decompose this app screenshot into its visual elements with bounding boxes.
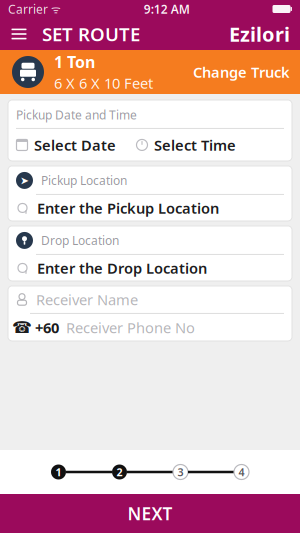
staticText: Pickup Location — [41, 172, 127, 188]
staticText: 2 — [116, 465, 122, 479]
staticText: 4 — [238, 465, 244, 479]
button[interactable]: Select Date — [8, 133, 116, 157]
staticText: Change Truck — [193, 62, 290, 82]
staticText: 1 — [55, 465, 61, 479]
staticText: Drop Location — [41, 232, 119, 248]
staticText: Receiver Phone No — [66, 318, 195, 337]
staticText: SET ROUTE — [42, 22, 140, 46]
staticText: ➤ — [20, 174, 29, 186]
staticText: Receiver Name — [36, 290, 138, 309]
staticText: Ezilori — [229, 21, 290, 47]
staticText: 6 X 6 X 10 Feet — [54, 73, 153, 93]
staticText: 3 — [177, 465, 183, 479]
staticText: Enter the Drop Location — [37, 258, 207, 278]
staticText: NEXT — [127, 502, 172, 525]
staticText: 9:12 AM — [144, 1, 190, 17]
staticText: 1 Ton — [54, 51, 95, 72]
button[interactable]: ☎ — [8, 314, 292, 341]
button[interactable]: Enter the Drop Location — [8, 255, 292, 281]
staticText: +60 — [35, 318, 59, 337]
button[interactable]: NEXT — [0, 494, 300, 533]
staticText: Carrier — [8, 1, 48, 17]
button[interactable]: Menu — [0, 17, 38, 51]
staticText: Select Date — [34, 135, 116, 155]
button[interactable]: Change Truck — [193, 62, 300, 82]
button[interactable]: Select Time — [116, 133, 236, 157]
staticText: ᯤ — [48, 2, 61, 16]
staticText: ☎ — [12, 318, 32, 337]
staticText: Enter the Pickup Location — [37, 198, 219, 218]
staticText: Select Time — [154, 135, 236, 155]
staticText: Pickup Date and Time — [16, 107, 137, 123]
button[interactable]: Receiver Name — [8, 286, 292, 313]
button[interactable]: Enter the Pickup Location — [8, 195, 292, 221]
